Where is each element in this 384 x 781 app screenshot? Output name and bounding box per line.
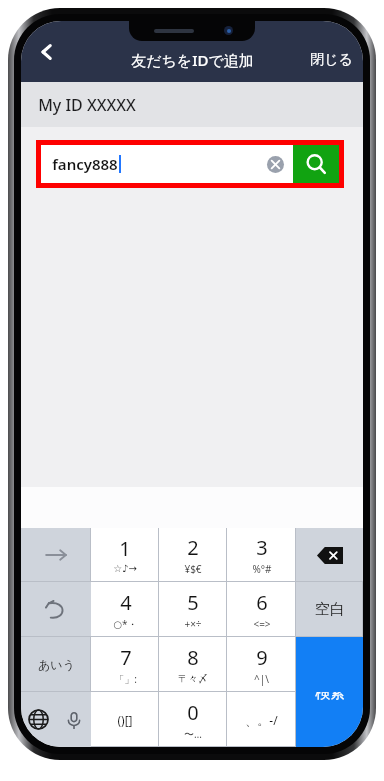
button[interactable]: 4 — [91, 582, 159, 637]
button[interactable]: Voice input — [56, 692, 91, 747]
button[interactable]: Clear text — [261, 150, 289, 178]
staticText: 〜… — [184, 727, 202, 741]
button[interactable] — [21, 528, 91, 582]
staticText: 4 — [120, 589, 132, 616]
staticText: 〒々〆 — [178, 672, 208, 685]
staticText: 1 — [119, 535, 131, 562]
button[interactable]: 8 — [159, 637, 227, 692]
staticText: 8 — [187, 644, 199, 671]
staticText: ○*・ — [113, 617, 138, 631]
staticText: fancy888 — [52, 154, 118, 174]
staticText: <=> — [253, 617, 271, 631]
staticText: 5 — [187, 589, 199, 616]
staticText: %°# — [252, 562, 272, 576]
button[interactable]: fancy888 — [41, 145, 339, 183]
staticText: ()[] — [117, 712, 133, 728]
staticText: 「」: — [114, 672, 137, 686]
staticText: 9 — [256, 644, 268, 671]
button[interactable]: 閉じる — [300, 45, 363, 75]
button[interactable]: 、。-/ — [227, 692, 296, 747]
staticText: 3 — [256, 534, 268, 561]
staticText: 7 — [120, 644, 132, 671]
button[interactable]: 7 — [91, 637, 159, 692]
button[interactable]: 空白 — [296, 582, 363, 637]
button[interactable]: 検索 — [296, 692, 363, 747]
staticText: ^|\ — [254, 672, 269, 686]
staticText: 空白 — [315, 600, 345, 619]
staticText: 2 — [187, 534, 199, 561]
button[interactable]: ()[] — [91, 692, 159, 747]
button[interactable]: Back — [25, 30, 69, 74]
staticText: 検索 — [315, 692, 345, 703]
button[interactable]: 6 — [227, 582, 296, 637]
button[interactable]: 3 — [227, 528, 296, 582]
button[interactable]: 5 — [159, 582, 227, 637]
button[interactable]: 9 — [227, 637, 296, 692]
staticText: 0 — [187, 699, 199, 726]
staticText: 閉じる — [310, 51, 353, 69]
button[interactable]: Change keyboard — [21, 692, 56, 747]
button[interactable]: Delete — [296, 528, 363, 582]
staticText: ☆♪→ — [113, 563, 137, 575]
button[interactable]: 1 — [91, 528, 159, 582]
button[interactable]: Undo — [21, 582, 91, 637]
button[interactable]: 0 — [159, 692, 227, 747]
staticText: 、。-/ — [245, 712, 278, 728]
staticText: My ID XXXXX — [38, 94, 136, 116]
staticText: ¥$€ — [184, 562, 202, 576]
staticText: 6 — [256, 589, 268, 616]
staticText: あいう — [38, 657, 75, 672]
button[interactable]: Search — [293, 145, 339, 183]
staticText: 友だちをIDで追加 — [131, 50, 254, 70]
button[interactable]: 2 — [159, 528, 227, 582]
button[interactable]: あいう — [21, 637, 91, 692]
staticText: +×÷ — [184, 617, 202, 631]
